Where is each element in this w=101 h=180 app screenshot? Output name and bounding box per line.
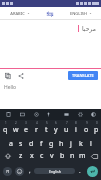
button[interactable]: x [26,149,37,163]
button[interactable]: g [46,135,56,149]
staticText: i [75,125,77,135]
staticText: d [29,139,34,149]
staticText: p [94,125,99,135]
staticText: c [40,151,44,161]
button[interactable]: 6 [51,121,61,135]
button[interactable]: TRANSLATE [68,71,98,80]
staticText: l [90,139,92,149]
button[interactable]: Shift [0,149,15,163]
staticText: r [35,125,38,135]
button[interactable]: English [34,163,75,179]
button[interactable]: 9 [81,121,91,135]
staticText: مرحبا [82,25,96,32]
button[interactable]: Contrast [90,111,97,118]
staticText: u [64,125,69,135]
staticText: k [79,139,83,149]
button[interactable]: Enter [84,163,100,179]
button[interactable]: d [26,135,36,149]
button[interactable]: 2 [11,121,21,135]
staticText: TRANSLATE [72,73,94,78]
staticText: z [19,151,23,161]
button[interactable]: l [86,135,96,149]
staticText: a [9,139,13,149]
button[interactable]: c [37,149,47,163]
button[interactable]: z [15,149,26,163]
button[interactable]: ENGLISH [61,7,101,20]
button[interactable]: f [36,135,46,149]
staticText: 9 [86,121,88,125]
button[interactable]: h [56,135,66,149]
button[interactable]: j [66,135,76,149]
staticText: v [50,151,54,161]
staticText: h [59,139,64,149]
button[interactable]: 7 [61,121,71,135]
staticText: m [79,151,86,161]
button[interactable]: Emoji [13,163,25,179]
staticText: y [54,125,58,135]
staticText: 1 [5,121,7,125]
button[interactable]: 5 [41,121,51,135]
button[interactable]: Theme [63,111,70,118]
staticText: 3 [25,121,27,125]
button[interactable]: Swap languages [39,7,61,20]
staticText: ENGLISH [70,11,87,16]
button[interactable]: . [75,163,84,179]
button[interactable]: Microphone [45,111,52,118]
staticText: e [24,125,28,135]
staticText: . [79,167,81,175]
button[interactable]: 3 [21,121,31,135]
button[interactable]: k [76,135,86,149]
staticText: n [70,151,75,161]
staticText: 4 [36,121,38,125]
button[interactable]: m [77,149,87,163]
staticText: ?1 [6,169,10,174]
staticText: s [19,139,23,149]
staticText: ARABIC [10,11,25,16]
staticText: g [49,139,54,149]
button[interactable]: Copy [3,71,12,80]
staticText: x [30,151,34,161]
staticText: f [40,139,43,149]
staticText: b [60,151,65,161]
staticText: o [84,125,89,135]
staticText: j [70,139,72,149]
staticText: 6 [55,121,57,125]
button[interactable]: Settings [33,111,40,118]
staticText: English [49,169,61,174]
staticText: , [29,167,31,175]
staticText: q [3,125,8,135]
button[interactable]: Backspace [87,149,101,163]
button[interactable]: a [5,135,16,149]
button[interactable]: GIF [19,111,26,118]
staticText: Hello [4,84,17,91]
staticText: 2 [15,121,17,125]
staticText: t [45,125,48,135]
button[interactable]: n [67,149,77,163]
button[interactable]: 4 [31,121,41,135]
button[interactable]: s [16,135,26,149]
button[interactable]: مرحبا [0,20,101,68]
staticText: 8 [75,121,77,125]
button[interactable]: v [47,149,57,163]
button[interactable]: Preferences [77,111,84,118]
staticText: w [13,125,19,135]
button[interactable]: b [57,149,67,163]
button[interactable]: 0 [91,121,101,135]
button[interactable]: 1 [0,121,11,135]
staticText: 5 [46,121,48,125]
button[interactable]: ARABIC [0,7,39,20]
button[interactable]: Share [16,71,25,80]
button[interactable]: 8 [71,121,81,135]
button[interactable]: , [25,163,34,179]
button[interactable]: Symbols [1,163,13,179]
button[interactable]: Clipboard [5,111,12,118]
staticText: 7 [66,121,68,125]
staticText: 0 [96,121,98,125]
